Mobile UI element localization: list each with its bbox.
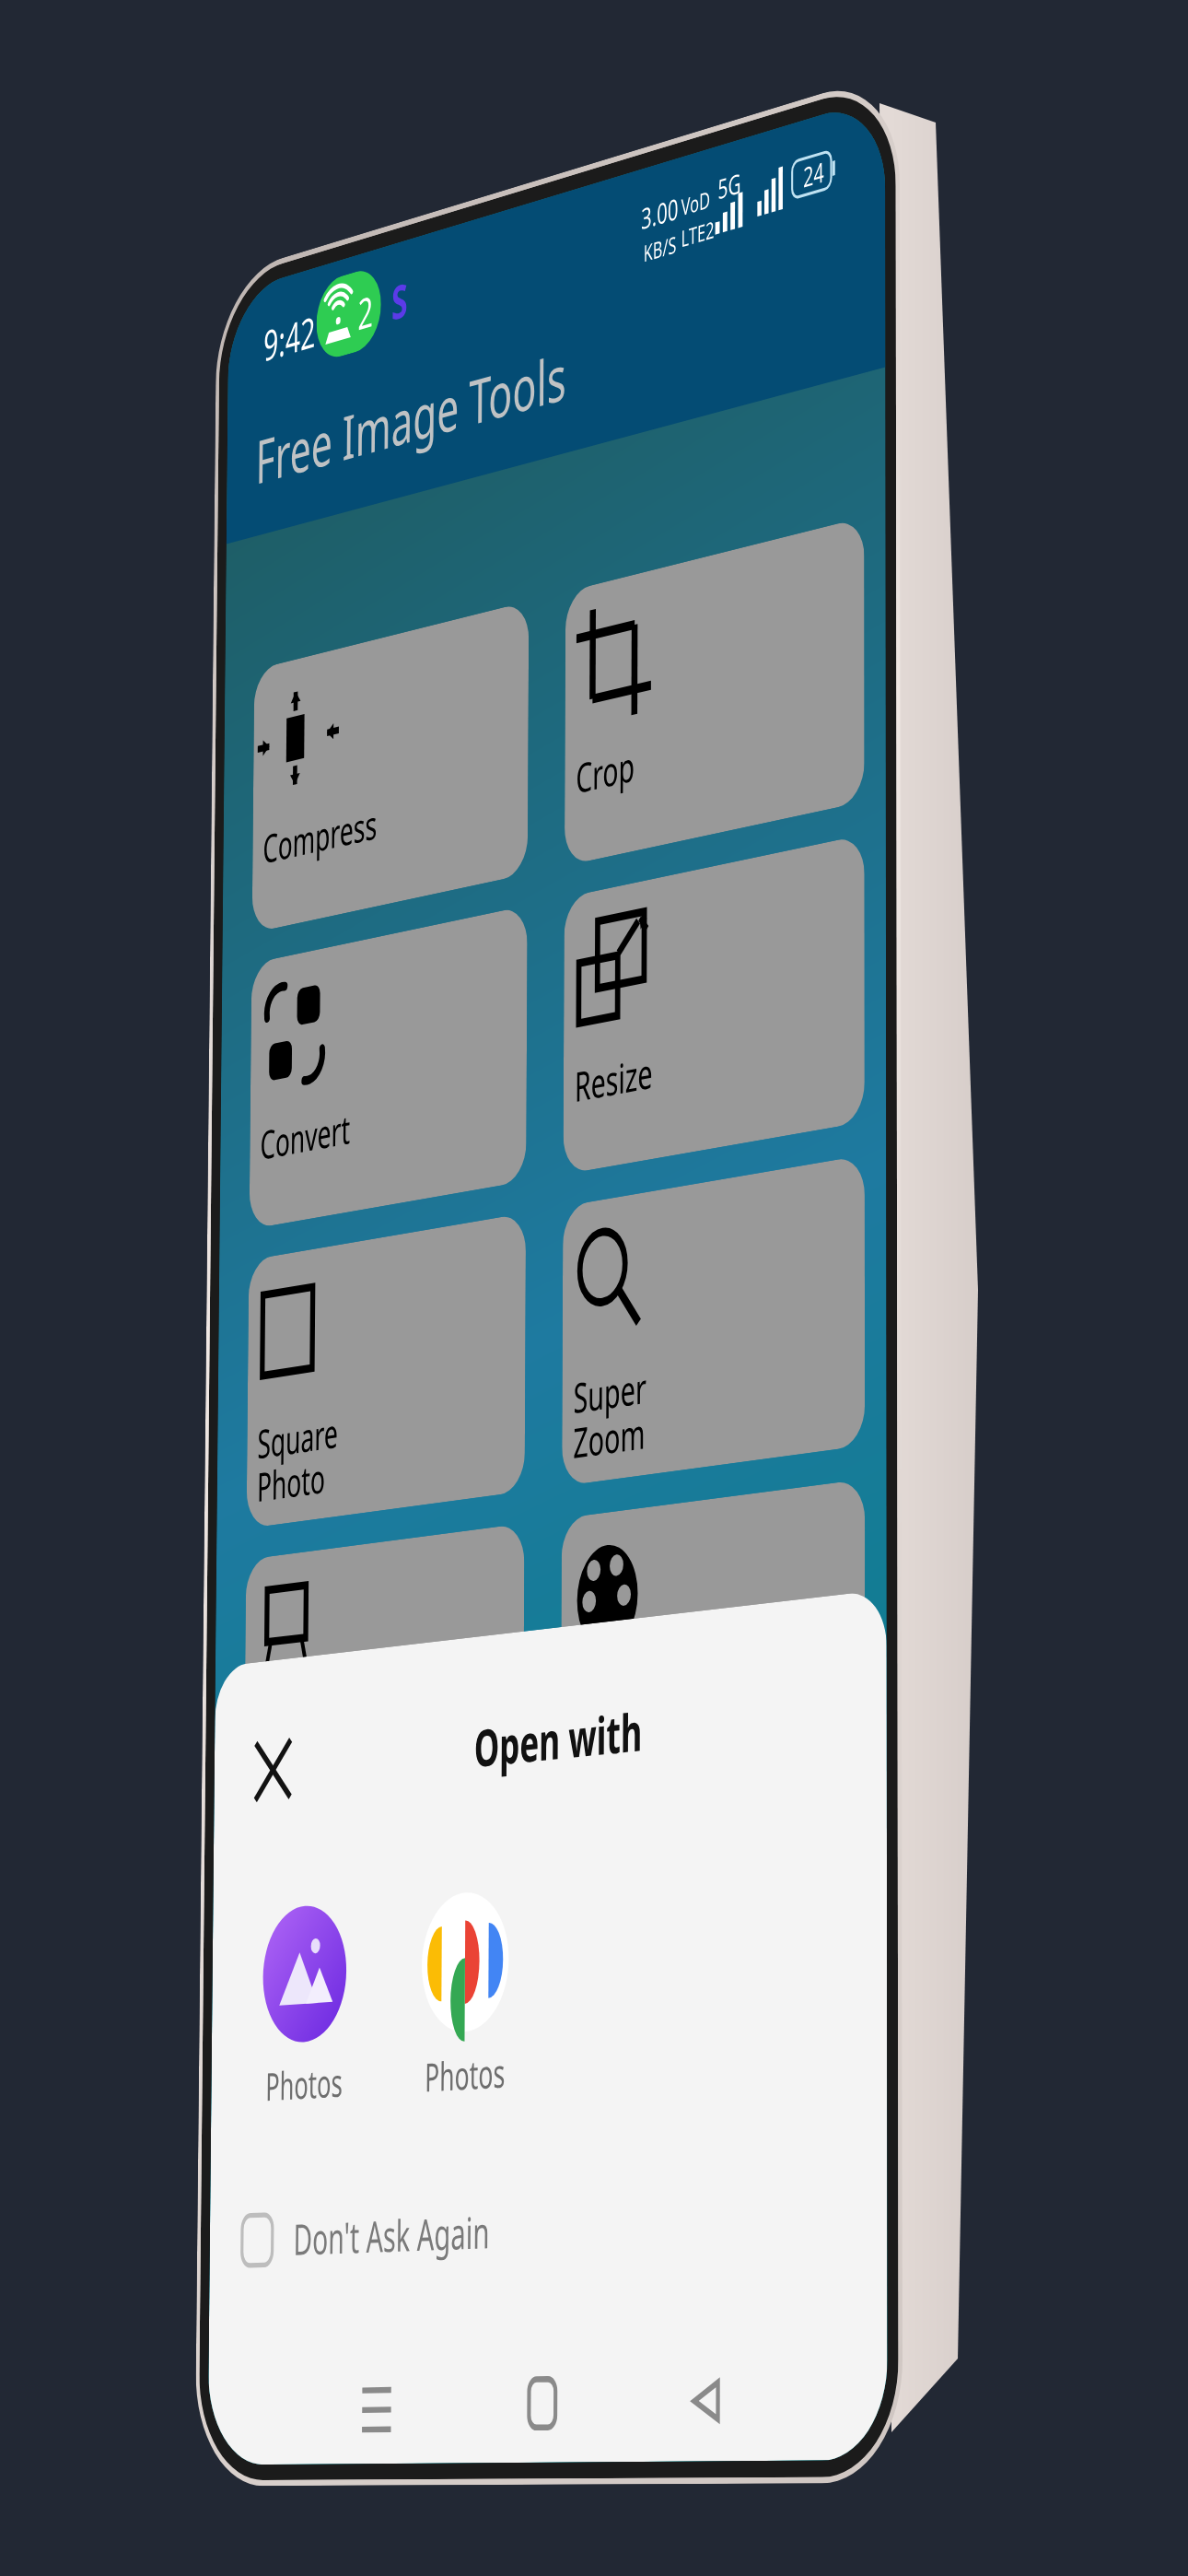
staticText: Convert <box>260 1101 351 1171</box>
staticText: LTE2 <box>681 213 715 254</box>
button[interactable]: Square Photo <box>246 1213 526 1529</box>
staticText: Paint <box>572 1677 636 1740</box>
staticText: Photos <box>265 2055 343 2111</box>
staticText: Photos <box>425 2045 505 2103</box>
button[interactable]: Draw <box>244 1523 524 1831</box>
staticText: Open with <box>474 1695 642 1782</box>
staticText: 2 <box>358 281 374 343</box>
staticText: Resize <box>575 1044 653 1114</box>
button[interactable]: Don't Ask Again <box>242 2202 490 2269</box>
staticText: Crop <box>576 737 635 805</box>
button[interactable]: Compress <box>252 601 529 933</box>
staticText: 9:42 <box>263 302 316 374</box>
button[interactable]: Back <box>692 2378 721 2424</box>
button[interactable]: Photos <box>419 1885 512 2103</box>
button[interactable]: Super Zoom <box>562 1155 865 1486</box>
button[interactable]: Photos <box>260 1898 349 2112</box>
staticText: Compress <box>263 796 377 875</box>
staticText: S <box>391 267 408 334</box>
staticText: 5G <box>718 164 741 207</box>
button[interactable]: Home <box>529 2379 556 2428</box>
button[interactable]: Close <box>255 1740 291 1800</box>
button[interactable]: Resize <box>563 834 865 1175</box>
staticText: KB/S <box>643 228 677 269</box>
staticText: Square Photo <box>257 1405 338 1513</box>
button[interactable]: Paint <box>560 1479 865 1801</box>
button[interactable]: Recents <box>362 2386 391 2434</box>
button[interactable]: Crop <box>564 517 864 866</box>
staticText: Super Zoom <box>573 1359 646 1470</box>
staticText: VoD <box>681 183 710 223</box>
staticText: Don't Ask Again <box>293 2202 490 2268</box>
staticText: Free Image Tools <box>255 332 567 502</box>
staticText: 24 <box>803 152 825 196</box>
staticText: 3.00 <box>641 188 679 238</box>
staticText: Draw <box>254 1712 315 1772</box>
button[interactable]: Convert <box>249 905 528 1229</box>
